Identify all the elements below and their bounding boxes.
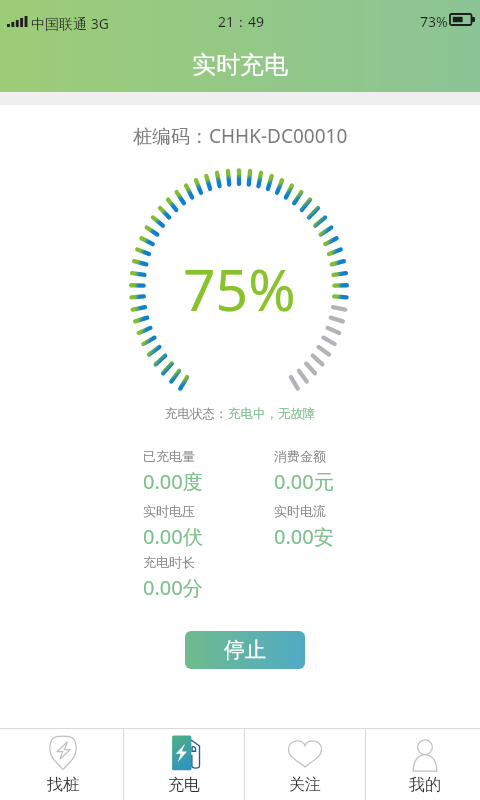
staticText: 已充电量 [143,448,195,464]
button[interactable]: 我的 [366,729,480,800]
staticText: 充电时长 [143,554,195,570]
button[interactable]: 关注 [245,729,365,800]
staticText: 实时电压 [143,503,195,519]
staticText: 实时电流 [274,503,326,519]
button[interactable]: 停止 [185,631,305,669]
staticText: 21：49 [218,12,265,31]
staticText: 找桩 [47,775,79,795]
staticText: 桩编码：CHHK-DC00010 [133,123,348,149]
staticText: 停止 [224,637,266,663]
staticText: 充电 [168,775,200,795]
staticText: 0.00元 [274,468,334,495]
staticText: 73% [420,12,448,31]
staticText: 75% [183,250,296,328]
staticText: 0.00安 [274,523,334,550]
staticText: 0.00伏 [143,523,203,550]
staticText: 中国联通 3G [31,14,109,33]
button[interactable]: 找桩 [3,729,123,800]
staticText: 充电中，无故障 [228,406,316,422]
staticText: 0.00分 [143,574,203,601]
staticText: 0.00度 [143,468,203,495]
staticText: 实时充电 [192,50,288,80]
button[interactable]: 充电 [124,729,244,800]
staticText: 消费金额 [274,448,326,464]
staticText: 充电状态： [165,406,228,422]
staticText: 关注 [289,775,321,795]
staticText: 我的 [409,775,441,795]
